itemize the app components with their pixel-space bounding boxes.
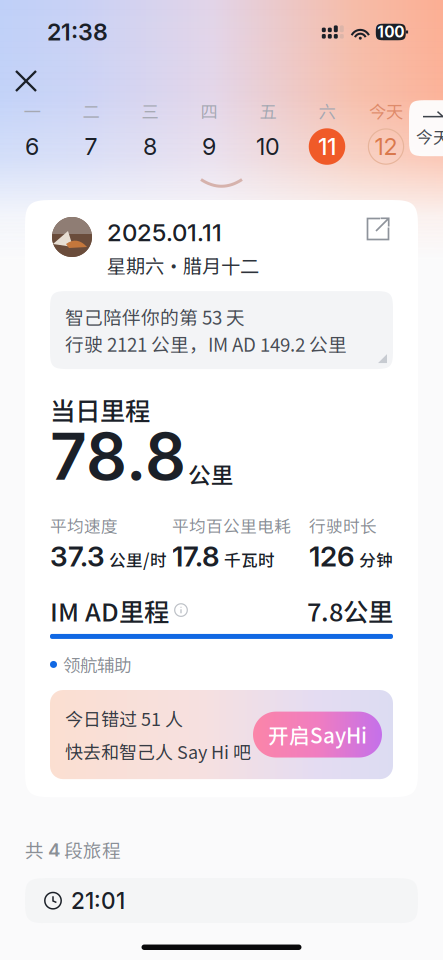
staticText: 11 xyxy=(318,132,336,161)
staticText: 8 xyxy=(143,132,157,161)
staticText: 10 xyxy=(256,132,280,161)
button[interactable]: Share xyxy=(365,216,391,242)
staticText: IM AD里程 xyxy=(50,592,169,629)
staticText: 7.8公里 xyxy=(307,592,393,629)
staticText: 段旅程 xyxy=(64,836,121,863)
staticText: 7 xyxy=(84,132,97,161)
staticText: 六 xyxy=(318,98,335,123)
button[interactable]: 一 xyxy=(12,98,52,165)
staticText: 四 xyxy=(200,98,217,123)
staticText: 公里 xyxy=(188,457,234,490)
staticText: 6 xyxy=(25,132,39,161)
button[interactable]: 三 xyxy=(130,98,170,165)
staticText: 9 xyxy=(202,132,216,161)
staticText: 公里/时 xyxy=(109,547,167,571)
staticText: 共 xyxy=(25,836,44,863)
staticText: 4 xyxy=(48,838,60,861)
button[interactable]: 五 xyxy=(248,98,288,165)
button[interactable]: Close xyxy=(3,61,49,101)
staticText: 智己陪伴你的第 53 天 xyxy=(65,303,245,330)
staticText: 平均速度 xyxy=(50,513,118,537)
button[interactable]: 今日错过 51 人 xyxy=(50,690,393,779)
staticText: 2025.01.11 xyxy=(107,218,222,247)
staticText: 行驶时长 xyxy=(309,513,377,537)
staticText: 分钟 xyxy=(359,547,393,571)
button[interactable]: Jump to today xyxy=(409,100,443,156)
staticText: 126 xyxy=(309,539,355,573)
button[interactable]: 今天 xyxy=(366,98,406,165)
staticText: 今日错过 51 人 xyxy=(65,705,183,731)
staticText: 12 xyxy=(374,132,397,161)
staticText: 100 xyxy=(377,23,404,41)
staticText: 17.8 xyxy=(172,539,220,573)
staticText: 行驶 2121 公里，IM AD 149.2 公里 xyxy=(65,330,347,357)
button[interactable]: 21:01 xyxy=(25,878,418,923)
staticText: 开启SayHi xyxy=(268,720,367,749)
staticText: 平均百公里电耗 xyxy=(172,513,291,537)
button[interactable]: 二 xyxy=(71,98,111,165)
staticText: 37.3 xyxy=(50,539,105,573)
staticText: 二 xyxy=(82,98,99,123)
staticText: 星期六·腊月十二 xyxy=(107,251,259,279)
staticText: 今天 xyxy=(416,124,443,148)
staticText: 五 xyxy=(259,98,276,123)
staticText: 21:01 xyxy=(71,887,125,914)
staticText: 当日里程 xyxy=(50,391,150,428)
staticText: 快去和智己人 Say Hi 吧 xyxy=(65,738,251,764)
button[interactable]: 四 xyxy=(189,98,229,165)
staticText: 领航辅助 xyxy=(63,652,131,677)
button[interactable]: 六 xyxy=(307,98,347,165)
staticText: 三 xyxy=(141,98,158,123)
staticText: 21:38 xyxy=(47,18,108,46)
staticText: 今天 xyxy=(369,98,403,123)
staticText: 78.8 xyxy=(50,418,186,495)
staticText: 千瓦时 xyxy=(224,547,275,571)
staticText: 一 xyxy=(23,98,40,123)
